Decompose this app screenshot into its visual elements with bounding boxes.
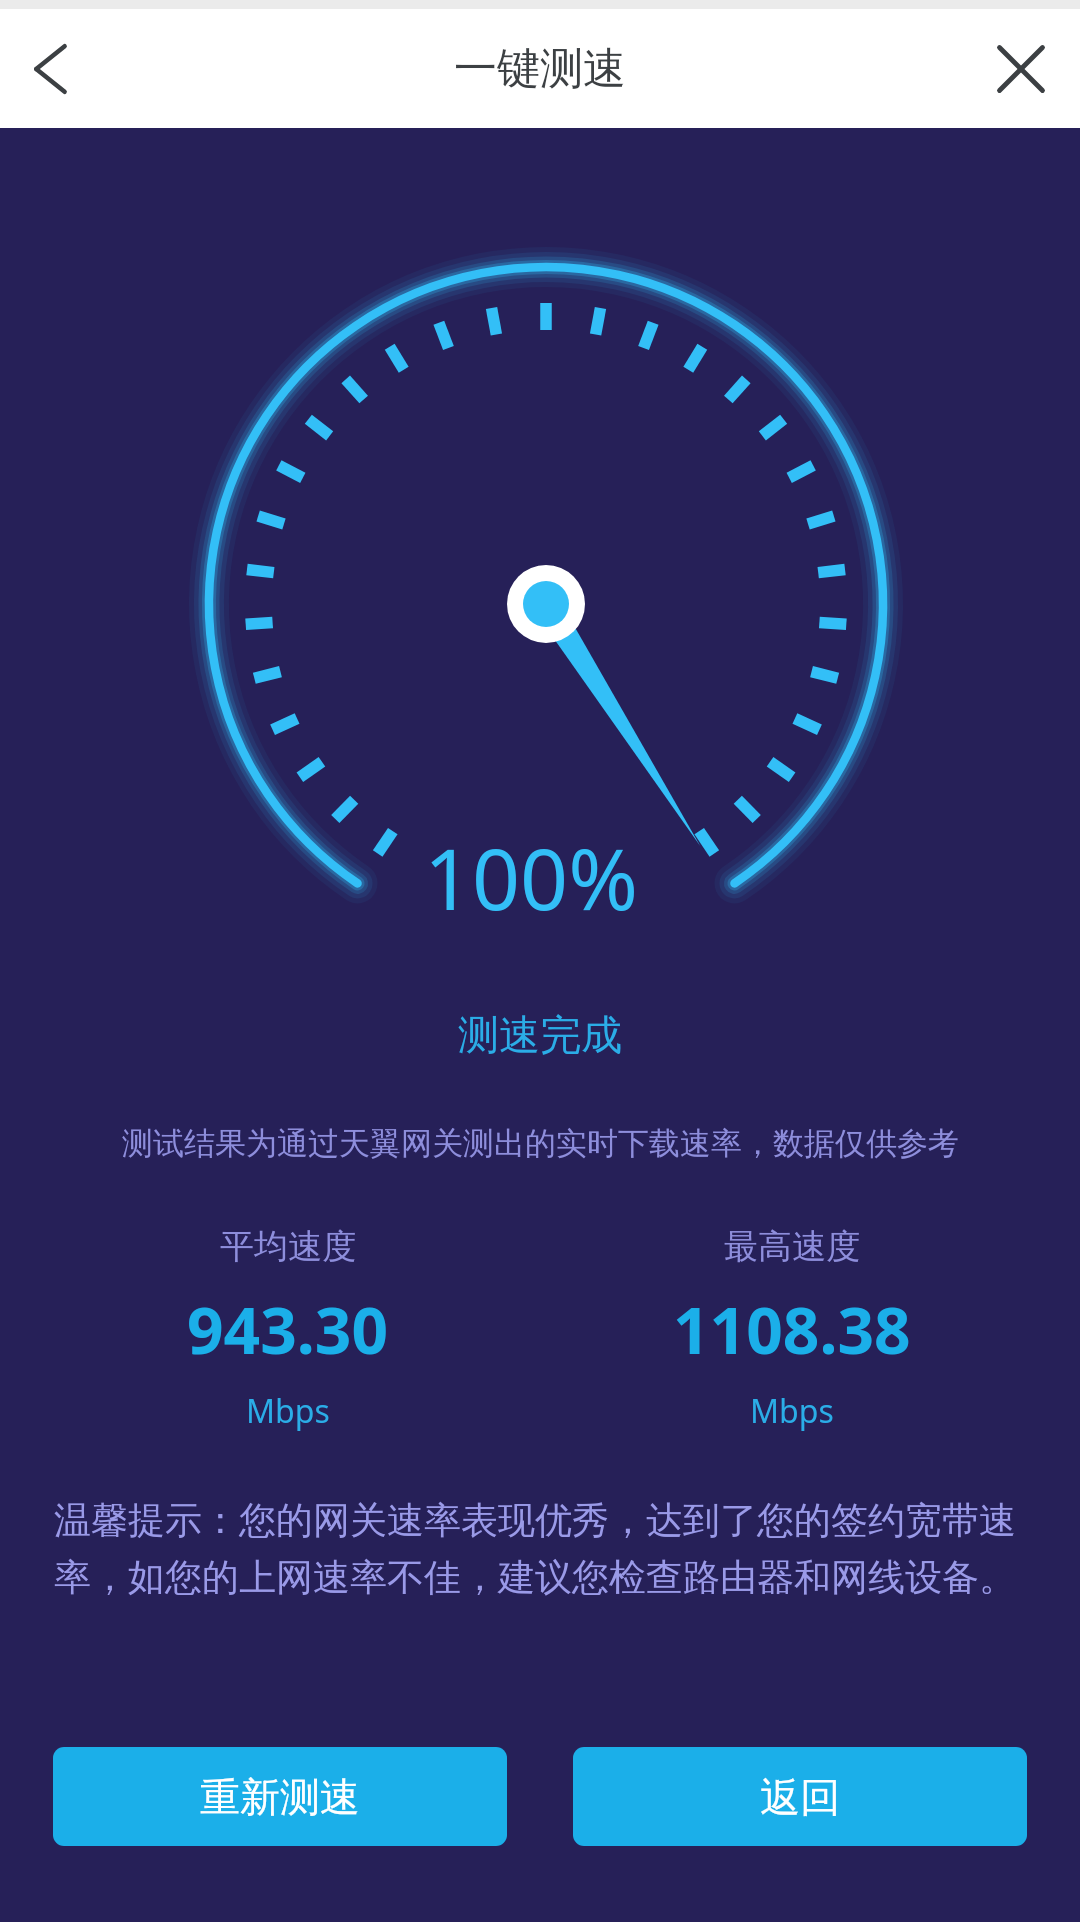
staticText: 返回 xyxy=(760,1772,840,1822)
button[interactable]: Back xyxy=(4,26,90,112)
button[interactable]: 返回 xyxy=(573,1747,1027,1846)
staticText: 100% xyxy=(424,820,638,934)
staticText: 1108.38 xyxy=(673,1286,911,1373)
staticText: 重新测速 xyxy=(200,1772,360,1822)
staticText: 测试结果为通过天翼网关测出的实时下载速率，数据仅供参考 xyxy=(122,1124,959,1163)
staticText: 一键测速 xyxy=(454,42,626,96)
staticText: 测速完成 xyxy=(458,1010,622,1062)
button[interactable]: Close xyxy=(978,26,1064,112)
staticText: 943.30 xyxy=(187,1286,389,1373)
staticText: Mbps xyxy=(750,1389,834,1433)
staticText: 温馨提示：您的网关速率表现优秀，达到了您的签约宽带速率，如您的上网速率不佳，建议… xyxy=(54,1497,1026,1601)
staticText: Mbps xyxy=(246,1389,330,1433)
button[interactable]: 重新测速 xyxy=(53,1747,507,1846)
staticText: 最高速度 xyxy=(724,1225,860,1268)
staticText: 平均速度 xyxy=(220,1225,356,1268)
